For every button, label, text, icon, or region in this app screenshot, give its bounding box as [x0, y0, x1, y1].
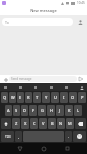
button[interactable]: U — [51, 92, 59, 103]
staticText: To — [5, 20, 9, 25]
button[interactable]: Recents — [63, 144, 72, 153]
button[interactable]: P — [78, 92, 86, 103]
button[interactable]: Backspace — [75, 118, 86, 129]
staticText: Y — [45, 95, 48, 100]
staticText: Z — [15, 121, 18, 126]
staticText: S — [15, 108, 18, 113]
staticText: H — [50, 108, 53, 113]
button[interactable]: ?123 — [1, 131, 14, 142]
staticText: J — [59, 108, 61, 113]
button[interactable]: O — [69, 92, 77, 103]
staticText: K — [68, 108, 71, 113]
staticText: L — [77, 108, 80, 113]
button[interactable]: E — [17, 92, 24, 103]
button[interactable]: Q — [1, 92, 8, 103]
button[interactable]: J — [56, 105, 64, 116]
button[interactable]: Y — [42, 92, 50, 103]
staticText: X — [24, 121, 27, 126]
button[interactable]: K — [65, 105, 73, 116]
staticText: R — [27, 95, 30, 100]
staticText: C — [33, 121, 36, 126]
staticText: Send message — [11, 77, 32, 81]
staticText: V — [42, 121, 45, 126]
button[interactable]: Toolbar 3 — [49, 85, 54, 90]
staticText: E — [19, 95, 22, 100]
button[interactable]: R — [25, 92, 32, 103]
button[interactable]: N — [57, 118, 65, 129]
button[interactable]: . — [65, 131, 72, 142]
staticText: D — [23, 108, 26, 113]
button[interactable]: W — [9, 92, 16, 103]
button[interactable]: F — [29, 105, 37, 116]
button[interactable]: T — [33, 92, 41, 103]
staticText: U — [54, 95, 57, 100]
button[interactable]: Shift — [1, 118, 11, 129]
staticText: 10:45 — [77, 1, 85, 5]
staticText: N — [59, 121, 63, 126]
button[interactable]: Toolbar 2 — [33, 85, 38, 90]
button[interactable]: A — [5, 105, 12, 116]
button[interactable]: Send message — [9, 76, 77, 82]
staticText: M — [68, 121, 72, 126]
staticText: P — [81, 95, 84, 100]
staticText: I — [63, 95, 65, 100]
staticText: New message — [30, 8, 57, 13]
button[interactable]: Voice input — [79, 85, 84, 90]
button[interactable]: C — [30, 118, 38, 129]
button[interactable]: Add contact — [75, 17, 85, 27]
button[interactable]: D — [21, 105, 28, 116]
staticText: A — [7, 108, 10, 113]
staticText: W — [11, 95, 15, 100]
button[interactable]: Attach — [2, 76, 9, 83]
button[interactable]: B — [48, 118, 56, 129]
staticText: . — [68, 134, 70, 139]
staticText: ?123 — [5, 135, 11, 139]
staticText: G — [41, 108, 44, 113]
button[interactable]: M — [66, 118, 74, 129]
button[interactable]: Send — [77, 75, 85, 83]
staticText: , — [18, 134, 20, 139]
staticText: T — [36, 95, 39, 100]
button[interactable]: L — [74, 105, 82, 116]
button[interactable]: G — [38, 105, 46, 116]
button[interactable]: Z — [12, 118, 20, 129]
button[interactable]: I — [60, 92, 68, 103]
button[interactable]: S — [13, 105, 20, 116]
button[interactable]: Home — [39, 144, 48, 153]
button[interactable]: Toolbar 4 — [64, 85, 69, 90]
button[interactable]: Back — [15, 144, 24, 153]
staticText: Q — [3, 95, 7, 100]
button[interactable]: X — [21, 118, 29, 129]
button[interactable]: Emoji — [73, 131, 86, 142]
button[interactable]: V — [39, 118, 47, 129]
button[interactable]: To — [2, 18, 73, 26]
button[interactable]: Toolbar 0 — [3, 85, 8, 90]
staticText: B — [51, 121, 54, 126]
staticText: O — [71, 95, 75, 100]
button[interactable]: H — [47, 105, 55, 116]
button[interactable]: , — [15, 131, 22, 142]
button[interactable]: Toolbar 1 — [18, 85, 23, 90]
staticText: F — [32, 108, 35, 113]
